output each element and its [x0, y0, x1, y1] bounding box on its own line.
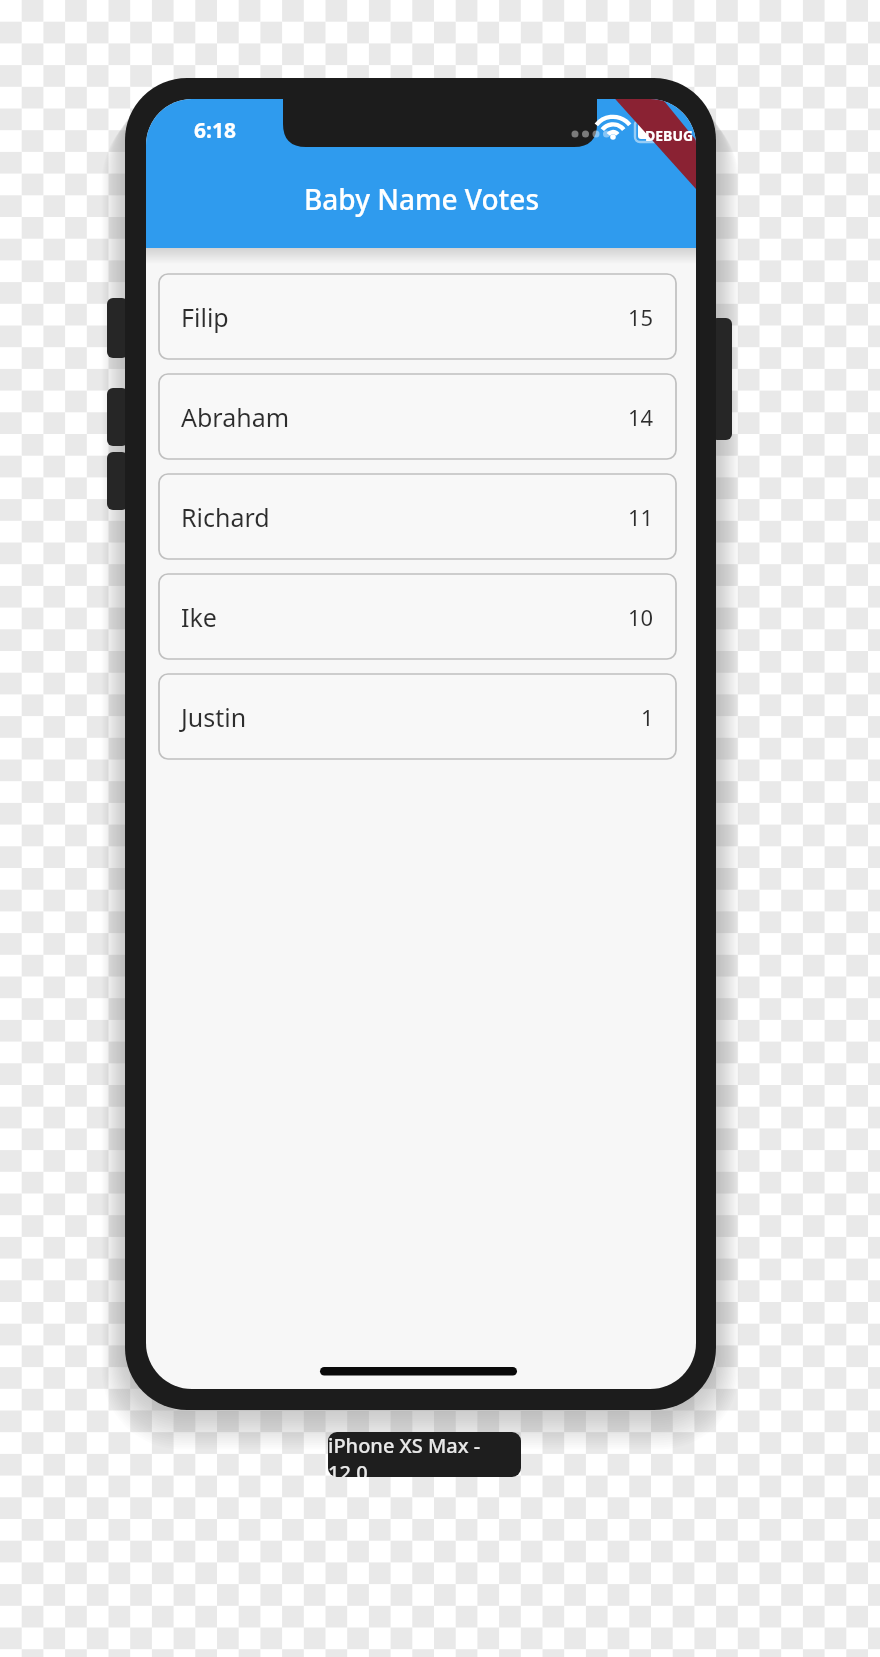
button[interactable]: Abraham [159, 374, 676, 459]
staticText: Abraham [181, 400, 290, 434]
staticText: Justin [181, 700, 247, 734]
staticText: 1 [641, 702, 654, 732]
button[interactable]: Richard [159, 474, 676, 559]
staticText: 6:18 [194, 116, 236, 144]
staticText: 14 [628, 402, 654, 432]
staticText: 15 [628, 302, 654, 332]
staticText: Richard [181, 500, 270, 534]
button[interactable]: Justin [159, 674, 676, 759]
staticText: Filip [181, 300, 229, 334]
staticText: iPhone XS Max - 12.0 [328, 1432, 521, 1477]
staticText: 10 [628, 602, 654, 632]
button[interactable]: Ike [159, 574, 676, 659]
staticText: Baby Name Votes [304, 180, 539, 218]
button[interactable]: Filip [159, 274, 676, 359]
staticText: Ike [181, 600, 217, 634]
staticText: DEBUG [645, 126, 694, 145]
staticText: 11 [628, 502, 654, 532]
